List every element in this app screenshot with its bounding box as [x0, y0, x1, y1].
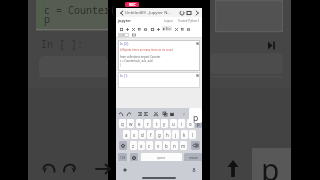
staticText: q: [121, 121, 124, 127]
staticText: Untitled69 - Jupyter N...: [125, 10, 171, 16]
button[interactable]: Move down: [155, 26, 161, 32]
staticText: u: [172, 121, 175, 127]
button[interactable]: d: [139, 130, 146, 139]
button[interactable]: w: [127, 119, 134, 128]
staticText: c: [148, 143, 151, 149]
staticText: p: [193, 112, 199, 123]
staticText: Trusted Python 3: [178, 19, 200, 23]
button[interactable]: Redo: [126, 111, 132, 117]
staticText: c = Counter(a+b, a+b, a+b): [120, 59, 154, 63]
staticText: j: [175, 132, 177, 138]
staticText: v: [157, 143, 160, 149]
button[interactable]: Help: [181, 111, 187, 117]
button[interactable]: b: [163, 141, 170, 150]
staticText: f: [150, 132, 152, 138]
staticText: ?: [183, 112, 185, 117]
staticText: from collections import Counter: [120, 55, 161, 59]
button[interactable]: p: [195, 119, 202, 128]
button[interactable]: f: [147, 130, 154, 139]
button[interactable]: Move up: [149, 26, 155, 32]
button[interactable]: Add cell: [124, 26, 130, 32]
button[interactable]: e: [136, 119, 143, 128]
button[interactable]: Code: [118, 33, 129, 37]
button[interactable]: x: [138, 141, 145, 150]
button[interactable]: Outdent: [137, 111, 143, 117]
button[interactable]: Microphone: [190, 166, 197, 173]
button[interactable]: q: [119, 119, 126, 128]
button[interactable]: c: [146, 141, 153, 150]
button[interactable]: m: [180, 141, 187, 150]
button[interactable]: Delete: [191, 141, 200, 150]
button[interactable]: Reload: [178, 9, 185, 16]
staticText: c = Counter(: [44, 3, 116, 17]
staticText: i: [181, 121, 183, 127]
button[interactable]: Paste: [169, 111, 175, 117]
button[interactable]: Run: [162, 26, 172, 31]
staticText: e: [138, 121, 141, 127]
staticText: return: [189, 156, 198, 160]
staticText: REC: [129, 2, 136, 7]
button[interactable]: Keyboard settings: [121, 166, 128, 173]
button[interactable]: Shift: [119, 141, 127, 150]
button[interactable]: l: [189, 130, 196, 139]
staticText: k: [183, 132, 186, 138]
button[interactable]: z: [130, 141, 137, 150]
button[interactable]: Cut: [130, 26, 136, 32]
button[interactable]: k: [181, 130, 188, 139]
staticText: t: [156, 121, 158, 127]
staticText: d: [141, 132, 144, 138]
button[interactable]: s: [131, 130, 138, 139]
button[interactable]: u: [170, 119, 177, 128]
button[interactable]: o: [187, 119, 194, 128]
button[interactable]: Tabs: [185, 9, 193, 17]
staticText: |: [120, 63, 122, 67]
button[interactable]: i: [178, 119, 185, 128]
button[interactable]: v: [155, 141, 162, 150]
button[interactable]: Paste: [142, 26, 148, 32]
staticText: m: [181, 143, 186, 149]
staticText: space: [157, 156, 166, 160]
button[interactable]: Back: [118, 9, 125, 16]
staticText: h: [166, 132, 169, 138]
button[interactable]: Undo: [118, 111, 124, 117]
button[interactable]: Command palette: [132, 33, 136, 37]
staticText: w: [129, 121, 133, 127]
button[interactable]: y: [161, 119, 168, 128]
staticText: y: [163, 121, 166, 127]
staticText: In [2]:: [120, 42, 129, 46]
staticText: g: [158, 132, 161, 138]
button[interactable]: j: [172, 130, 179, 139]
button[interactable]: Cut: [153, 111, 159, 117]
button[interactable]: Restart: [179, 26, 185, 32]
staticText: Run: [165, 27, 171, 31]
button[interactable]: Copy: [136, 26, 142, 32]
button[interactable]: r: [144, 119, 151, 128]
staticText: a: [125, 132, 128, 138]
staticText: Code: [118, 33, 125, 37]
button[interactable]: Interrupt: [173, 26, 179, 32]
button[interactable]: Return: [184, 153, 202, 162]
button[interactable]: h: [164, 130, 171, 139]
button[interactable]: n: [171, 141, 178, 150]
button[interactable]: t: [153, 119, 160, 128]
staticText: p: [261, 149, 280, 180]
staticText: z: [132, 143, 135, 149]
button[interactable]: Copy: [162, 111, 168, 117]
staticText: l: [192, 132, 194, 138]
button[interactable]: a: [123, 130, 130, 139]
staticText: Logout: [164, 19, 173, 23]
staticText: b: [165, 143, 168, 149]
button[interactable]: Numbers: [118, 153, 127, 162]
staticText: In [ ]:: [41, 37, 83, 51]
button[interactable]: space: [141, 153, 182, 162]
button[interactable]: Indent: [143, 111, 149, 117]
button[interactable]: Emoji: [130, 153, 138, 162]
staticText: jupyter: [118, 18, 131, 23]
button[interactable]: g: [156, 130, 163, 139]
button[interactable]: Forward: [193, 9, 200, 16]
button[interactable]: Restart and run: [185, 26, 191, 32]
staticText: s: [133, 132, 136, 138]
button[interactable]: Save: [118, 26, 124, 32]
